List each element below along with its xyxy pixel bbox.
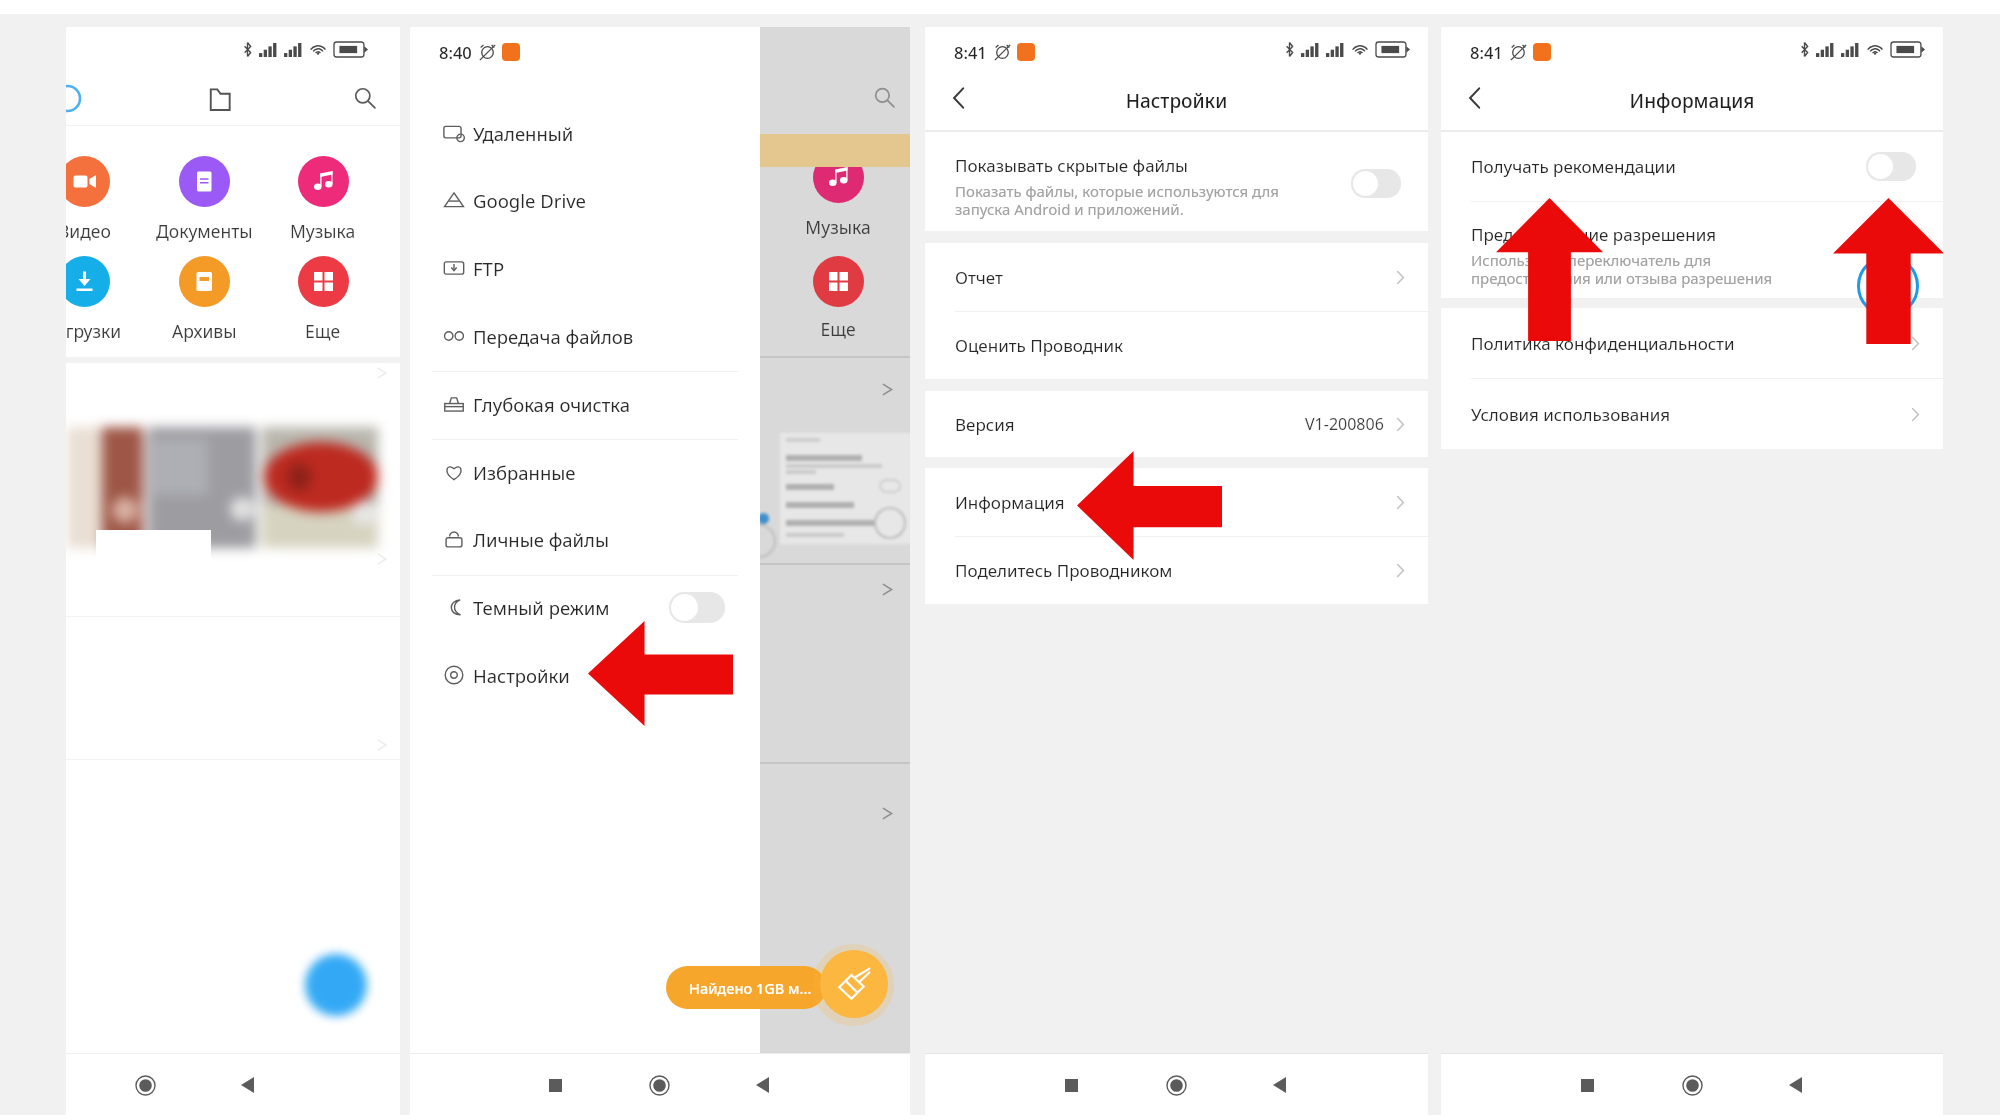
staticText: Найдено 1GB м... — [689, 978, 812, 998]
button[interactable]: Версия — [925, 391, 1428, 457]
staticText: Еще — [788, 317, 888, 341]
button[interactable]: Back — [740, 1063, 784, 1107]
staticText: Передача файлов — [473, 324, 634, 349]
button[interactable]: Home — [637, 1063, 681, 1107]
button[interactable]: Оценить Проводник — [925, 312, 1428, 379]
button[interactable]: Recents — [533, 1063, 577, 1107]
staticText: Глубокая очистка — [473, 392, 631, 417]
staticText: Настройки — [925, 88, 1428, 114]
staticText: Получать рекомендации — [1471, 155, 1676, 178]
button[interactable]: Folders — [198, 77, 241, 120]
staticText: Избранные — [473, 460, 576, 485]
staticText: Настройки — [473, 663, 570, 688]
staticText: Политика конфиденциальности — [1471, 332, 1735, 355]
button[interactable]: Home — [123, 1063, 167, 1107]
button[interactable]: Search — [343, 76, 386, 119]
button[interactable]: Back — [1451, 75, 1497, 121]
button[interactable]: Загрузки — [66, 256, 139, 343]
button[interactable]: Recents — [1049, 1063, 1093, 1107]
staticText: Документы — [156, 219, 253, 243]
staticText: V1-200806 — [1305, 413, 1384, 435]
button[interactable]: Back — [1257, 1063, 1301, 1107]
staticText: Оценить Проводник — [955, 334, 1124, 357]
button[interactable]: Предоставление разрешения — [1441, 202, 1943, 298]
staticText: Еще — [305, 319, 341, 343]
button[interactable]: Глубокая очистка — [410, 378, 760, 430]
staticText: Google Drive — [473, 188, 586, 213]
button[interactable]: Документы — [149, 156, 259, 243]
staticText: Информация — [1441, 88, 1943, 114]
staticText: Показывать скрытые файлы — [955, 154, 1189, 177]
staticText: Музыка — [788, 215, 888, 239]
button[interactable]: Home — [1670, 1063, 1714, 1107]
button[interactable]: Личные файлы — [410, 513, 760, 565]
staticText: FTP — [473, 256, 505, 281]
button[interactable]: Back — [225, 1063, 269, 1107]
button[interactable]: Темный режим — [410, 581, 760, 633]
button[interactable]: Получать рекомендации — [1441, 132, 1943, 201]
button[interactable]: Архивы — [149, 256, 259, 343]
button[interactable]: Toggle — [669, 592, 725, 623]
staticText: Показать файлы, которые используются для… — [955, 181, 1280, 220]
staticText: Музыка — [290, 219, 356, 243]
staticText: Предоставление разрешения — [1471, 223, 1717, 246]
button[interactable]: Удаленный — [410, 107, 760, 159]
staticText: Поделитесь Проводником — [955, 559, 1173, 582]
button[interactable]: Информация — [925, 468, 1428, 536]
button[interactable]: FTP — [410, 242, 760, 294]
staticText: Версия — [955, 413, 1015, 436]
button[interactable]: Отчет — [925, 243, 1428, 311]
staticText: Информация — [955, 491, 1065, 514]
staticText: Темный режим — [473, 595, 610, 620]
button[interactable]: New — [305, 954, 367, 1016]
staticText: Используйте переключатель для предоставл… — [1471, 250, 1773, 289]
staticText: 8:41 — [954, 41, 987, 63]
button[interactable]: Передача файлов — [410, 310, 760, 362]
button[interactable]: Политика конфиденциальности — [1441, 308, 1943, 378]
button[interactable]: Back — [1773, 1063, 1817, 1107]
button[interactable]: Музыка — [268, 156, 378, 243]
button[interactable]: Настройки — [410, 649, 760, 701]
button[interactable]: Условия использования — [1441, 379, 1943, 449]
button[interactable]: Back — [935, 75, 981, 121]
button[interactable]: Еще — [268, 256, 378, 343]
button[interactable]: Toggle — [1866, 152, 1916, 181]
button[interactable]: Видео — [66, 156, 139, 243]
button[interactable]: Избранные — [410, 446, 760, 498]
button[interactable]: Clean — [820, 950, 888, 1018]
staticText: 8:41 — [1470, 41, 1503, 63]
button[interactable]: Найдено 1GB м... — [666, 966, 826, 1009]
staticText: Архивы — [172, 319, 237, 343]
button[interactable]: Recents — [1565, 1063, 1609, 1107]
staticText: Условия использования — [1471, 403, 1671, 426]
button[interactable]: Показывать скрытые файлы — [925, 132, 1428, 231]
staticText: Личные файлы — [473, 527, 610, 552]
staticText: 8:40 — [439, 41, 472, 63]
button[interactable]: Home — [1154, 1063, 1198, 1107]
button[interactable]: Google Drive — [410, 174, 760, 226]
staticText: Загрузки — [66, 319, 122, 343]
button[interactable]: Toggle — [1351, 169, 1401, 198]
button[interactable]: Поделитесь Проводником — [925, 537, 1428, 604]
staticText: Отчет — [955, 266, 1003, 289]
staticText: Удаленный — [473, 121, 574, 146]
staticText: Видео — [66, 219, 111, 243]
